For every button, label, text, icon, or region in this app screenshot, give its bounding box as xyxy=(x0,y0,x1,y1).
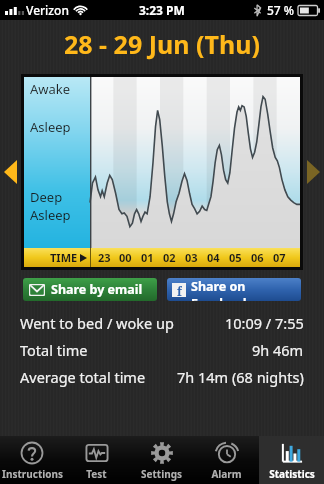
staticText: 28 - 29 Jun (Thu) xyxy=(64,27,260,61)
staticText: 07 xyxy=(273,250,286,265)
staticText: 57 % xyxy=(267,2,295,18)
button[interactable]: Test xyxy=(64,436,129,484)
staticText: Share by email xyxy=(51,281,143,298)
staticText: 3:23 PM xyxy=(139,2,185,18)
staticText: TIME xyxy=(50,250,78,265)
staticText: Share on Facebook xyxy=(191,278,301,301)
staticText: 04 xyxy=(207,250,220,265)
staticText: 23 xyxy=(98,250,111,265)
staticText: 9h 46m xyxy=(252,340,304,360)
staticText: 00 xyxy=(119,250,132,265)
staticText: Asleep xyxy=(30,206,71,224)
staticText: Test xyxy=(86,467,107,481)
staticText: 10:09 / 7:55 xyxy=(225,313,304,333)
staticText: 05 xyxy=(229,250,242,265)
staticText: 02 xyxy=(163,250,176,265)
button[interactable]: Settings xyxy=(129,436,194,484)
button[interactable]: Instructions xyxy=(0,436,64,484)
staticText: Awake xyxy=(30,80,71,98)
button[interactable]: Statistics xyxy=(259,436,324,484)
staticText: f xyxy=(177,283,182,297)
button[interactable]: f xyxy=(167,278,301,301)
staticText: Asleep xyxy=(30,118,71,136)
button[interactable]: Alarm xyxy=(194,436,259,484)
staticText: 06 xyxy=(251,250,264,265)
staticText: Statistics xyxy=(269,467,315,481)
button[interactable]: Average total time xyxy=(20,367,304,387)
button[interactable]: Next night xyxy=(303,72,324,272)
staticText: Settings xyxy=(141,467,182,481)
staticText: Total time xyxy=(20,340,88,360)
staticText: 7h 14m (68 nights) xyxy=(177,367,304,387)
staticText: 03 xyxy=(185,250,198,265)
button[interactable]: Awake xyxy=(24,77,300,267)
staticText: 01 xyxy=(141,250,154,265)
staticText: Went to bed / woke up xyxy=(20,313,174,333)
staticText: Instructions xyxy=(2,467,63,481)
staticText: Deep xyxy=(30,188,63,206)
staticText: Average total time xyxy=(20,367,146,387)
staticText: Verizon xyxy=(26,2,69,18)
button[interactable]: Total time xyxy=(20,340,304,360)
button[interactable]: Went to bed / woke up xyxy=(20,313,304,333)
staticText: Alarm xyxy=(211,467,242,481)
button[interactable]: Previous night xyxy=(0,72,21,272)
button[interactable]: Share by email xyxy=(23,278,157,301)
